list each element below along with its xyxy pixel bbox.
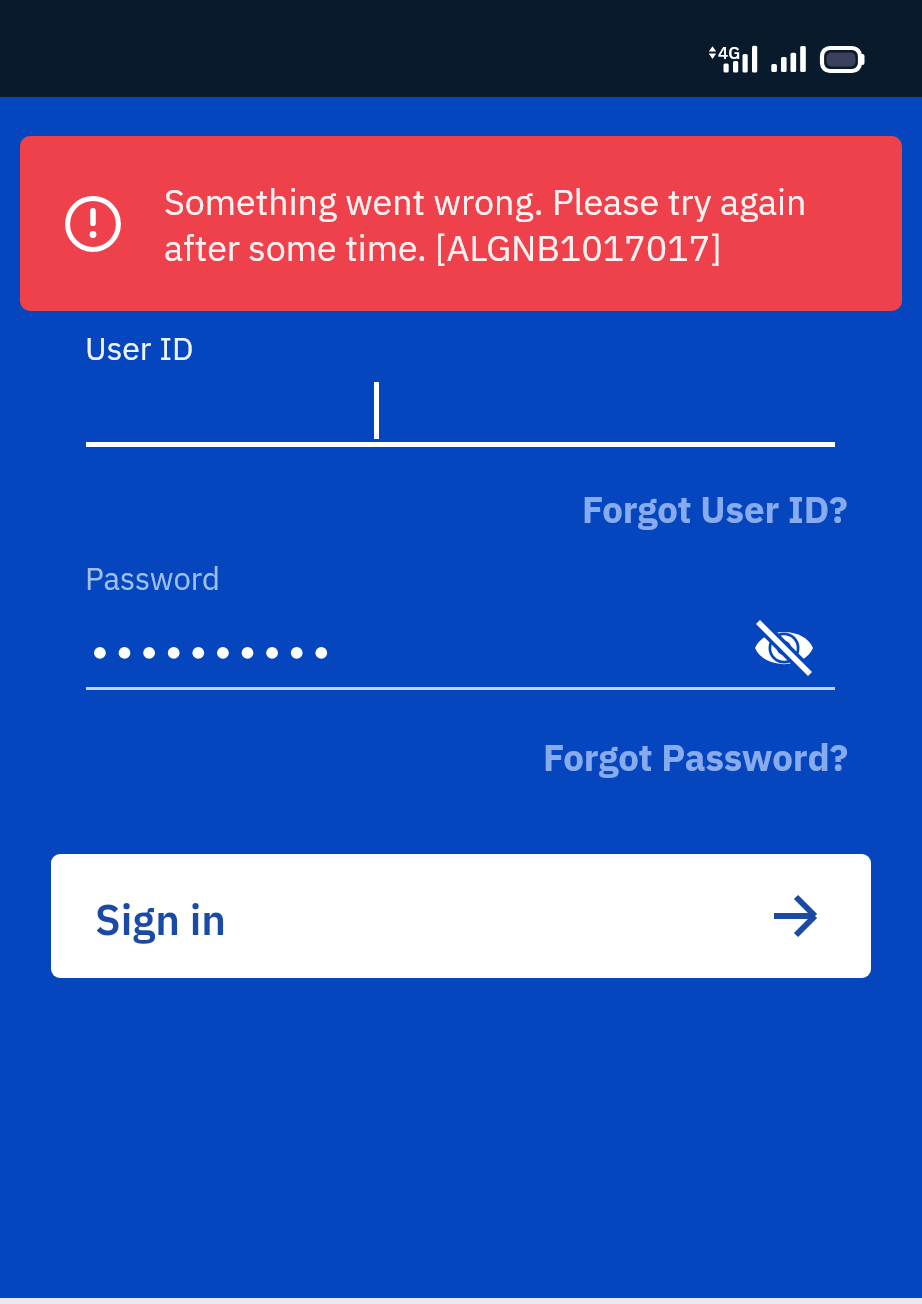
button[interactable]: Password	[86, 551, 706, 690]
staticText: Forgot User ID?	[582, 483, 848, 538]
button[interactable]: Forgot Password?	[528, 729, 859, 787]
button[interactable]: Sign in	[51, 854, 871, 978]
button[interactable]: User ID	[86, 320, 835, 447]
button[interactable]: Forgot User ID?	[564, 481, 859, 539]
staticText: Sign in	[95, 889, 227, 952]
other: Error	[65, 196, 121, 252]
staticText: 4G	[718, 41, 741, 66]
staticText: Password	[85, 556, 220, 603]
staticText: User ID	[85, 325, 194, 373]
button[interactable]: Show password	[734, 610, 833, 686]
staticText: Something went wrong. Please try again a…	[164, 182, 814, 274]
staticText: Forgot Password?	[543, 731, 848, 786]
